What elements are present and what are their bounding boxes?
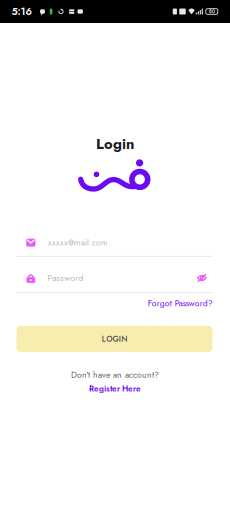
button[interactable]: Register Here (0, 383, 230, 394)
staticText: 5:16 (12, 4, 32, 19)
button[interactable]: Forgot Password? (148, 297, 213, 309)
button[interactable]: LOGIN (16, 326, 212, 352)
staticText: Don't have an account? (71, 369, 159, 381)
staticText: xxxxx@mail.com (48, 236, 108, 249)
staticText: 80 (209, 8, 215, 15)
staticText: LOGIN (102, 333, 127, 345)
staticText: Password (47, 272, 83, 284)
staticText: Forgot Password? (148, 297, 213, 309)
staticText: Login (96, 133, 134, 155)
button[interactable]: Show password (195, 272, 209, 284)
staticText: Register Here (89, 383, 141, 394)
